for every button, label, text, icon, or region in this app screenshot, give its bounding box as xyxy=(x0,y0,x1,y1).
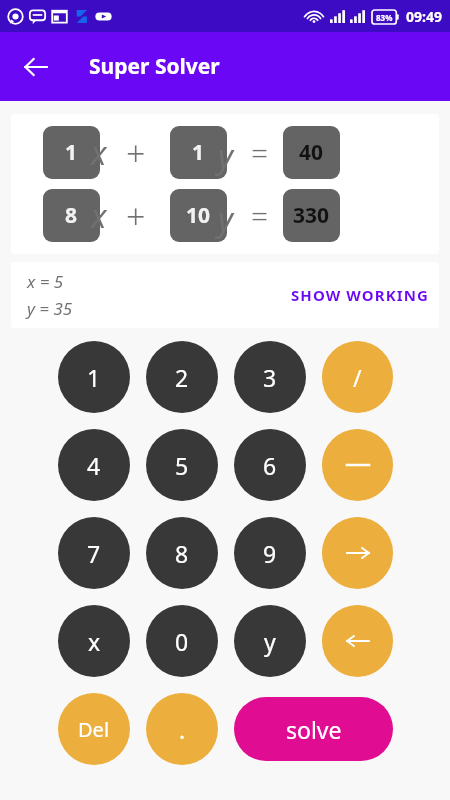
staticText: / xyxy=(353,362,362,393)
staticText: 4 xyxy=(87,450,101,481)
button[interactable]: 1 xyxy=(58,341,130,413)
staticText: y = 35 xyxy=(27,297,73,320)
staticText: solve xyxy=(286,714,342,745)
staticText: 83% xyxy=(376,12,393,23)
staticText: y xyxy=(218,134,233,178)
staticText: x = 5 xyxy=(27,270,64,293)
button[interactable]: 2 xyxy=(146,341,218,413)
staticText: . xyxy=(179,714,186,745)
staticText: 330 xyxy=(293,201,330,230)
staticText: 0 xyxy=(175,626,189,657)
button[interactable]: 1 xyxy=(43,126,100,179)
button[interactable]: Decimal point xyxy=(146,693,218,765)
staticText: + xyxy=(126,130,146,176)
staticText: Super Solver xyxy=(89,52,220,81)
staticText: = xyxy=(251,132,269,173)
button[interactable]: 8 xyxy=(43,189,100,242)
staticText: y xyxy=(218,197,233,241)
staticText: 40 xyxy=(299,138,324,167)
button[interactable]: 40 xyxy=(283,126,340,179)
staticText: x xyxy=(91,194,107,238)
staticText: 1 xyxy=(87,362,101,393)
button[interactable]: 5 xyxy=(146,429,218,501)
button[interactable]: 10 xyxy=(170,189,227,242)
staticText: 10 xyxy=(186,201,211,230)
staticText: x xyxy=(91,131,107,175)
staticText: 1 xyxy=(192,138,205,167)
button[interactable]: Back xyxy=(14,45,58,89)
staticText: 1 xyxy=(65,138,78,167)
button[interactable]: 4 xyxy=(58,429,130,501)
button[interactable]: Minus xyxy=(322,429,393,501)
staticText: + xyxy=(126,193,146,239)
button[interactable]: 7 xyxy=(58,517,130,589)
staticText: SHOW WORKING xyxy=(291,285,429,305)
button[interactable]: Divide xyxy=(322,341,393,413)
staticText: 6 xyxy=(263,450,277,481)
button[interactable]: 330 xyxy=(283,189,340,242)
staticText: 5 xyxy=(175,450,189,481)
button[interactable]: solve xyxy=(234,697,393,761)
staticText: 7 xyxy=(87,538,101,569)
button[interactable]: 9 xyxy=(234,517,306,589)
staticText: y xyxy=(264,626,276,657)
button[interactable]: Move right xyxy=(322,517,393,589)
staticText: 3 xyxy=(263,362,277,393)
staticText: 8 xyxy=(65,201,78,230)
button[interactable]: 3 xyxy=(234,341,306,413)
button[interactable]: 8 xyxy=(146,517,218,589)
staticText: 9 xyxy=(263,538,277,569)
button[interactable]: y xyxy=(234,605,306,677)
button[interactable]: 6 xyxy=(234,429,306,501)
button[interactable]: SHOW WORKING xyxy=(281,277,439,313)
staticText: Del xyxy=(78,716,110,743)
button[interactable]: Del xyxy=(58,693,130,765)
button[interactable]: Move left xyxy=(322,605,393,677)
staticText: x xyxy=(88,626,101,657)
staticText: 2 xyxy=(175,362,189,393)
staticText: 8 xyxy=(175,538,189,569)
button[interactable]: x xyxy=(58,605,130,677)
staticText: = xyxy=(251,195,269,236)
button[interactable]: 0 xyxy=(146,605,218,677)
staticText: 09:49 xyxy=(406,7,442,26)
button[interactable]: 1 xyxy=(170,126,227,179)
